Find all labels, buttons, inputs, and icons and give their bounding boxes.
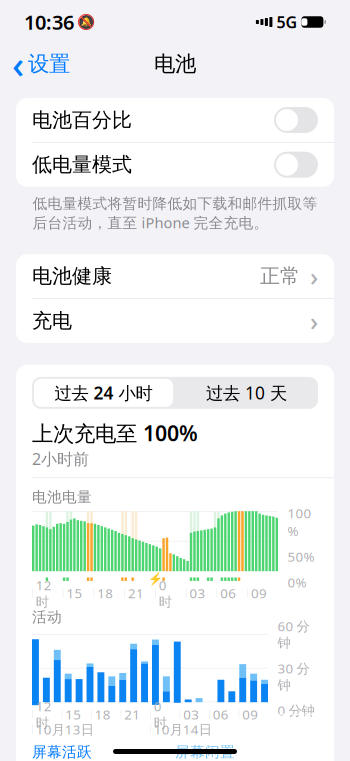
button[interactable]: 电池健康 xyxy=(16,254,334,299)
staticText: 充电 xyxy=(32,309,72,333)
staticText: › xyxy=(310,259,318,293)
staticText: 03 xyxy=(189,584,205,602)
staticText: 0% xyxy=(287,573,306,591)
staticText: ⚡ xyxy=(147,572,162,586)
staticText: 5G xyxy=(276,11,297,33)
button[interactable]: 过去 10 天 xyxy=(175,377,318,409)
staticText: 上次充电至 100% xyxy=(32,419,198,447)
staticText: ‹ xyxy=(12,39,24,89)
staticText: 电池 xyxy=(154,51,196,77)
staticText: 0时 xyxy=(159,576,172,610)
staticText: 21 xyxy=(128,584,144,602)
staticText: 12时 xyxy=(36,697,52,731)
staticText: 活动 xyxy=(32,608,62,626)
staticText: 2小时前 xyxy=(32,448,89,469)
button[interactable]: 充电 xyxy=(16,299,334,343)
staticText: 电池健康 xyxy=(32,264,112,288)
staticText: 03 xyxy=(183,705,199,723)
staticText: 🔕 xyxy=(77,14,95,30)
staticText: › xyxy=(310,304,318,338)
staticText: 09 xyxy=(251,584,267,602)
staticText: 18 xyxy=(97,584,113,602)
staticText: 12时 xyxy=(36,576,52,610)
staticText: 06 xyxy=(213,705,229,723)
staticText: 18 xyxy=(95,705,111,723)
staticText: 15 xyxy=(65,705,81,723)
staticText: 低电量模式 xyxy=(32,152,132,177)
staticText: 0时 xyxy=(154,697,167,731)
button[interactable]: 过去 24 小时 xyxy=(32,377,175,409)
staticText: 屏幕活跃 xyxy=(32,743,92,761)
staticText: 过去 10 天 xyxy=(206,381,287,404)
staticText: 电池百分比 xyxy=(32,108,132,132)
staticText: 低电量模式将暂时降低如下载和邮件抓取等后台活动，直至 iPhone 完全充电。 xyxy=(32,195,317,232)
staticText: 10月14日 xyxy=(154,720,212,738)
staticText: 100% xyxy=(287,504,311,540)
staticText: 10:36 xyxy=(24,9,74,35)
staticText: 电池电量 xyxy=(32,488,92,506)
button[interactable]: ‹ xyxy=(0,44,82,84)
button[interactable]: 电池百分比 xyxy=(16,98,334,143)
staticText: 10月13日 xyxy=(36,720,94,738)
staticText: 60 分钟 xyxy=(277,617,309,651)
staticText: 30 分钟 xyxy=(277,659,309,693)
staticText: 09 xyxy=(242,705,258,723)
staticText: 过去 24 小时 xyxy=(54,381,152,404)
staticText: 设置 xyxy=(28,51,70,77)
staticText: 06 xyxy=(220,584,236,602)
staticText: 15 xyxy=(66,584,82,602)
staticText: 正常 xyxy=(260,264,300,288)
staticText: 屏幕闲置 xyxy=(175,743,235,761)
staticText: 50% xyxy=(287,548,314,565)
staticText: 21 xyxy=(124,705,140,723)
button[interactable]: 低电量模式 xyxy=(16,143,334,187)
staticText: 0 分钟 xyxy=(277,701,314,719)
